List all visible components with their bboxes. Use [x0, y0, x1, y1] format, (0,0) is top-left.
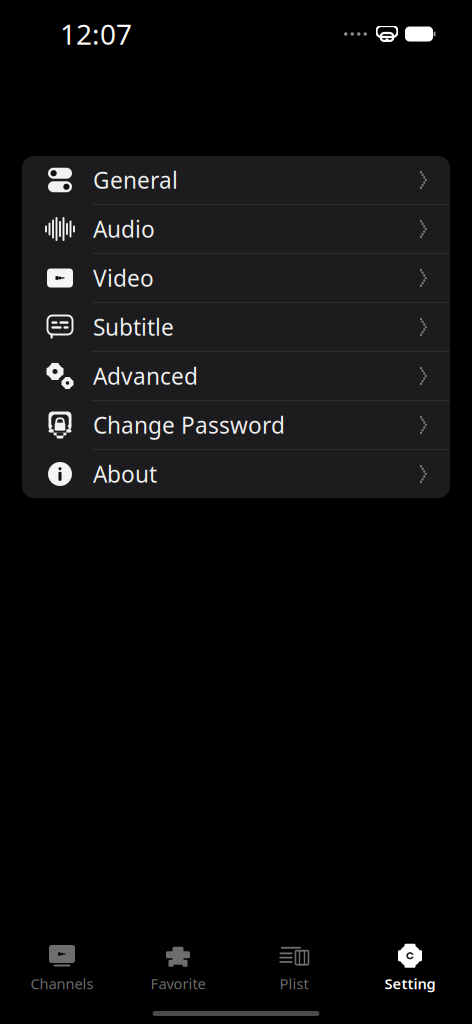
button[interactable]: Channels	[4, 940, 120, 996]
staticText: 12:07	[60, 15, 132, 53]
staticText: Audio	[93, 214, 155, 244]
button[interactable]: Video	[22, 254, 450, 303]
staticText: Subtitle	[93, 312, 174, 342]
button[interactable]: Audio	[22, 205, 450, 254]
button[interactable]: Advanced	[22, 352, 450, 401]
staticText: About	[93, 459, 157, 489]
staticText: Setting	[384, 974, 435, 993]
staticText: Change Password	[93, 410, 285, 440]
staticText: Video	[93, 263, 154, 293]
button[interactable]: Subtitle	[22, 303, 450, 352]
staticText: Channels	[30, 974, 93, 993]
button[interactable]: About	[22, 450, 450, 498]
button[interactable]: Favorite	[120, 940, 236, 996]
button[interactable]: General	[22, 156, 450, 205]
staticText: Favorite	[150, 974, 205, 993]
staticText: Plist	[279, 974, 308, 993]
button[interactable]: Change Password	[22, 401, 450, 450]
staticText: General	[93, 165, 178, 195]
staticText: Advanced	[93, 361, 198, 391]
button[interactable]: Setting	[352, 940, 468, 996]
button[interactable]: Plist	[236, 940, 352, 996]
